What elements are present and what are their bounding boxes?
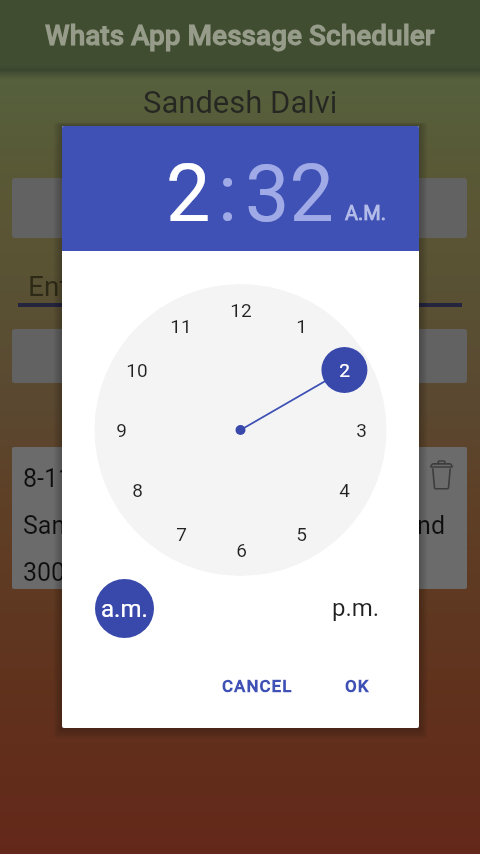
button[interactable] <box>12 329 467 383</box>
button[interactable]: Send <box>389 511 446 540</box>
staticText: Sandesh Dalvi <box>23 511 180 540</box>
button[interactable]: 4 <box>324 470 364 510</box>
staticText: 3 <box>356 419 367 441</box>
staticText: 11 <box>170 315 192 337</box>
staticText: Sandesh Dalvi <box>143 84 338 120</box>
staticText: a.m. <box>101 595 148 623</box>
button[interactable]: 12 <box>221 290 261 330</box>
button[interactable]: 6 <box>221 530 261 570</box>
staticText: 2 <box>166 148 211 241</box>
staticText: 10 <box>126 359 148 381</box>
button[interactable]: a.m. <box>95 579 154 638</box>
staticText: 5 <box>296 523 307 545</box>
button[interactable]: 11 <box>161 306 201 346</box>
staticText: Send <box>389 511 446 540</box>
staticText: 3000 <box>23 558 80 587</box>
staticText: 2 <box>339 359 350 381</box>
staticText: OK <box>345 676 370 696</box>
staticText: Whats App Message Scheduler <box>45 19 435 52</box>
staticText: 12 <box>230 299 252 321</box>
staticText: 6 <box>236 539 247 561</box>
button[interactable]: OK <box>335 668 380 704</box>
button[interactable]: 5 <box>281 514 321 554</box>
staticText: 1 <box>296 315 307 337</box>
staticText: 8 <box>132 479 143 501</box>
staticText: 4 <box>339 479 350 501</box>
button[interactable]: 32 <box>245 148 334 241</box>
staticText: Enter Message <box>28 270 214 303</box>
button[interactable] <box>12 178 467 238</box>
button[interactable]: 2 <box>166 148 211 241</box>
staticText: p.m. <box>332 594 380 622</box>
staticText: 9 <box>116 419 127 441</box>
button[interactable]: p.m. <box>324 588 388 628</box>
button[interactable]: Delete <box>424 457 458 495</box>
staticText: CANCEL <box>222 676 293 696</box>
button[interactable]: 2 <box>324 350 364 390</box>
button[interactable]: 3 <box>341 410 381 450</box>
staticText: : <box>218 148 238 241</box>
button[interactable]: 9 <box>101 410 141 450</box>
button[interactable]: 8-11-2019 11:59 <box>12 447 467 589</box>
button[interactable]: CANCEL <box>212 668 303 704</box>
button[interactable]: 10 <box>117 350 157 390</box>
staticText: 8-11-2019 11:59 <box>23 464 204 493</box>
staticText: A.M. <box>345 201 387 224</box>
staticText: 7 <box>176 523 187 545</box>
button[interactable]: 1 <box>281 306 321 346</box>
button[interactable]: 8 <box>117 470 157 510</box>
staticText: 32 <box>245 148 334 241</box>
button[interactable]: 7 <box>161 514 201 554</box>
